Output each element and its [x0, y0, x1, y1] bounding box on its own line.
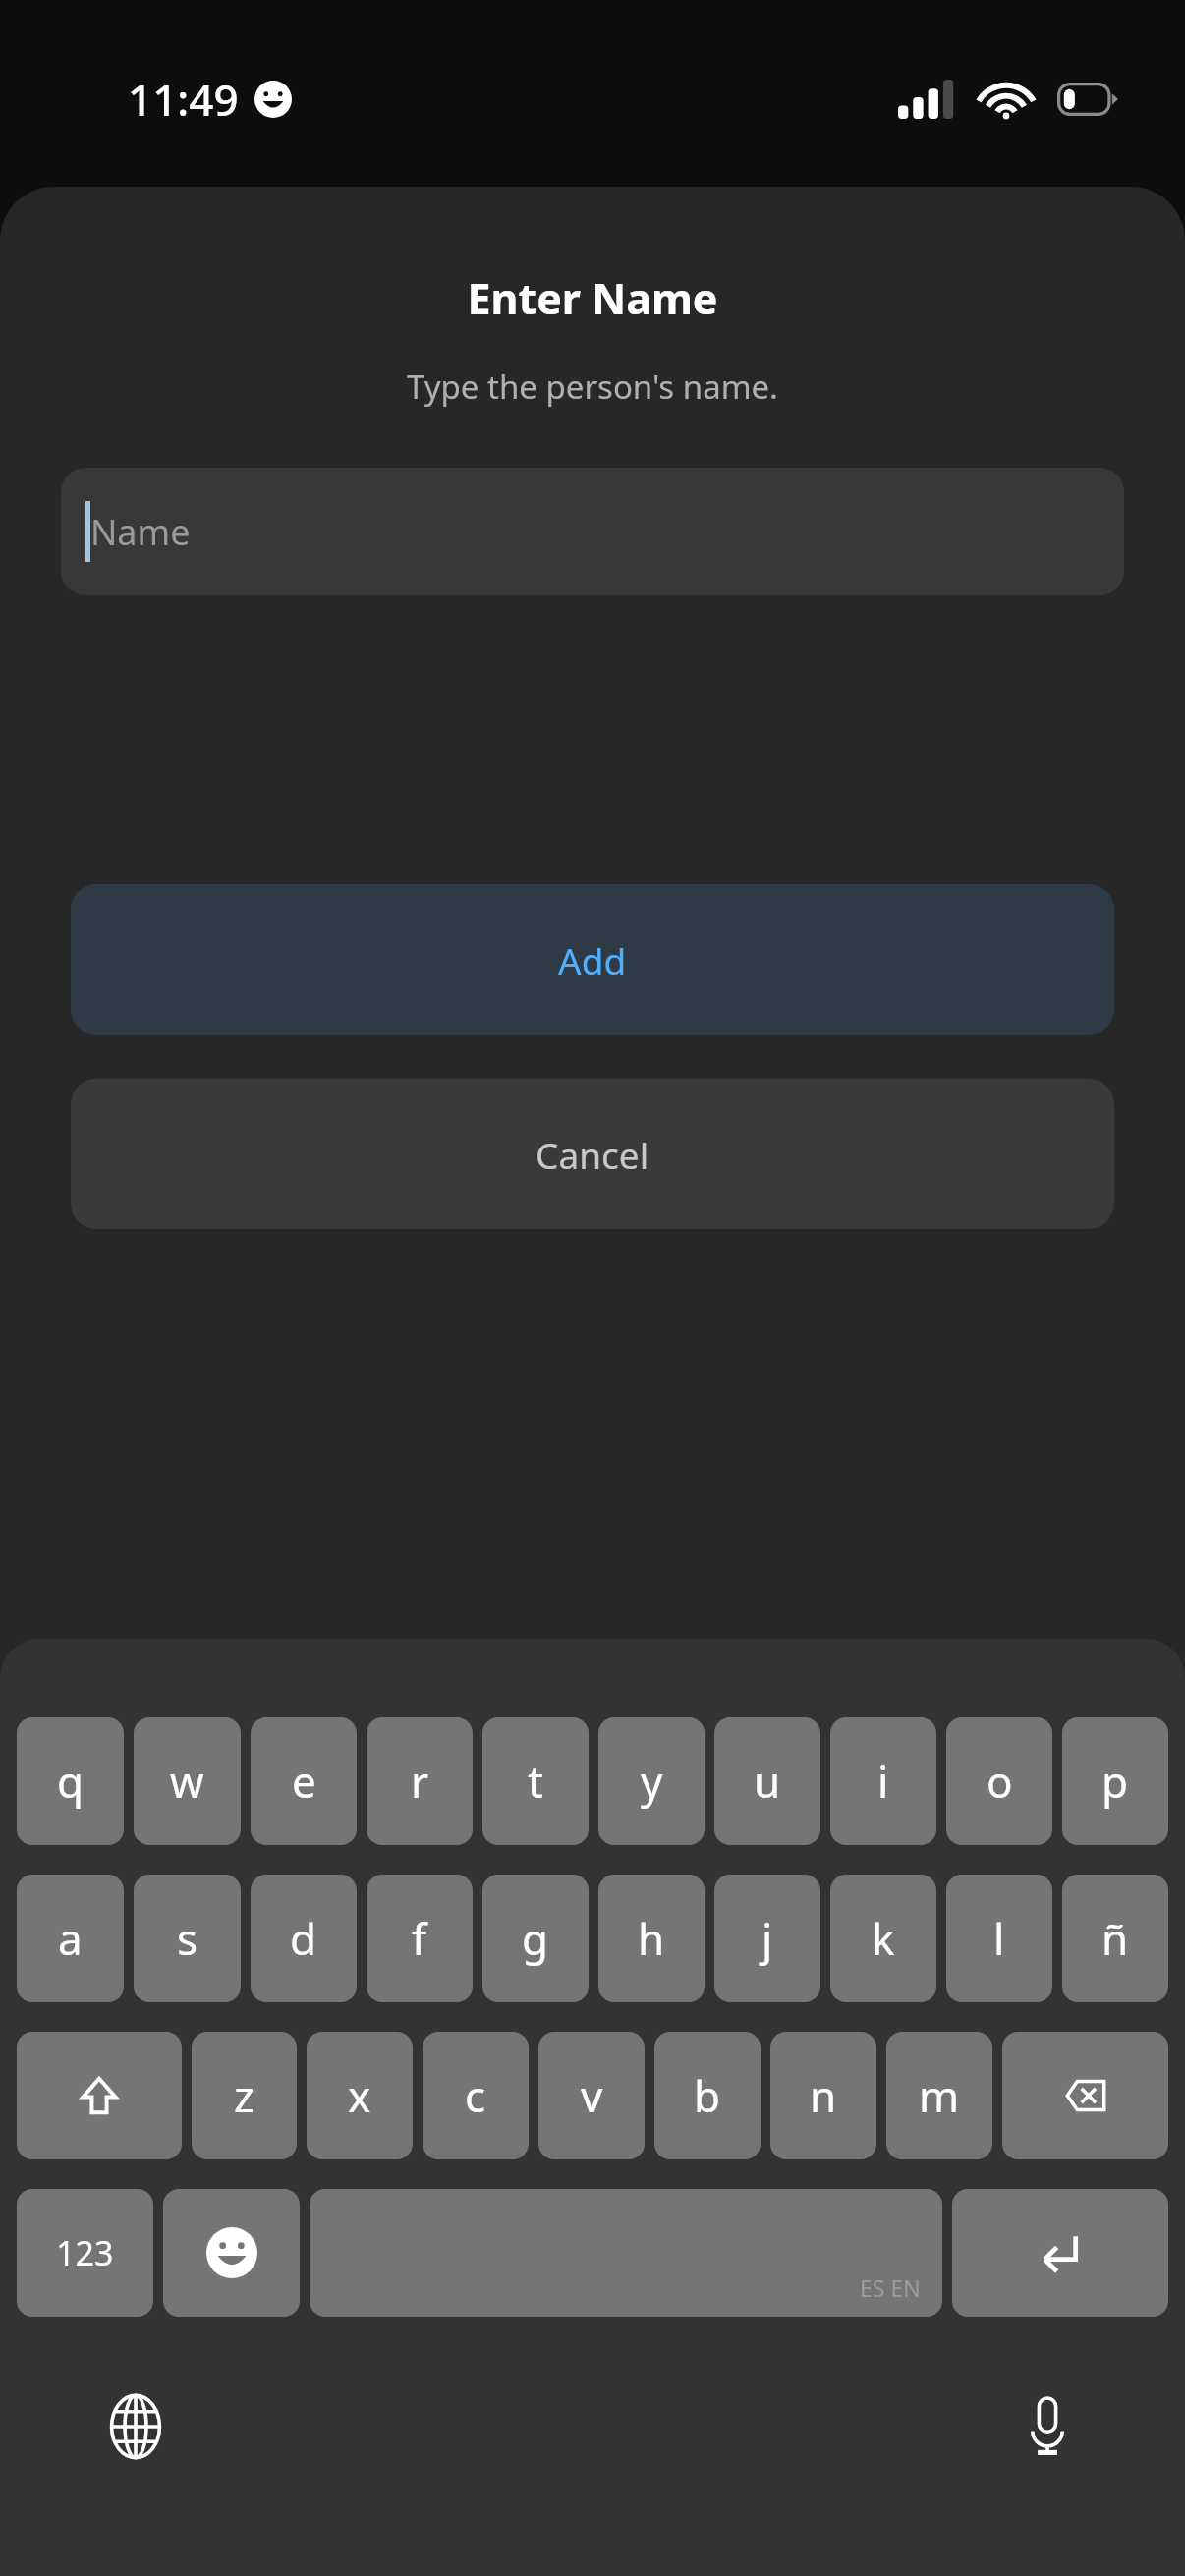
staticText: 11:49: [128, 70, 239, 129]
button[interactable]: q: [17, 1717, 124, 1845]
button[interactable]: Name: [61, 468, 1124, 595]
staticText: Enter Name: [0, 269, 1185, 327]
button[interactable]: t: [482, 1717, 589, 1845]
button[interactable]: i: [830, 1717, 936, 1845]
staticText: f: [412, 1909, 427, 1968]
staticText: x: [348, 2066, 371, 2125]
staticText: Name: [90, 508, 191, 556]
button[interactable]: Voice input: [1000, 2380, 1095, 2474]
staticText: ES EN: [860, 2272, 921, 2303]
button[interactable]: d: [251, 1875, 357, 2002]
staticText: k: [872, 1909, 895, 1968]
staticText: y: [641, 1752, 663, 1811]
button[interactable]: ñ: [1062, 1875, 1168, 2002]
button[interactable]: r: [367, 1717, 473, 1845]
staticText: n: [810, 2066, 837, 2125]
staticText: e: [292, 1752, 316, 1811]
staticText: i: [877, 1752, 889, 1811]
staticText: b: [694, 2066, 721, 2125]
button[interactable]: Add: [71, 884, 1114, 1035]
staticText: 123: [56, 2230, 114, 2275]
button[interactable]: s: [134, 1875, 241, 2002]
staticText: o: [987, 1752, 1013, 1811]
staticText: z: [234, 2066, 254, 2125]
button[interactable]: z: [192, 2032, 297, 2159]
button[interactable]: m: [886, 2032, 992, 2159]
button[interactable]: h: [598, 1875, 705, 2002]
button[interactable]: c: [423, 2032, 529, 2159]
staticText: t: [528, 1752, 543, 1811]
button[interactable]: Backspace: [1002, 2032, 1168, 2159]
staticText: h: [638, 1909, 665, 1968]
button[interactable]: Cancel: [71, 1079, 1114, 1229]
button[interactable]: x: [307, 2032, 413, 2159]
staticText: q: [57, 1752, 85, 1811]
button[interactable]: n: [770, 2032, 876, 2159]
staticText: u: [754, 1752, 781, 1811]
button[interactable]: l: [946, 1875, 1052, 2002]
staticText: v: [581, 2066, 603, 2125]
staticText: Cancel: [536, 1130, 649, 1179]
staticText: j: [762, 1909, 773, 1968]
staticText: c: [465, 2066, 486, 2125]
button[interactable]: y: [598, 1717, 705, 1845]
staticText: a: [58, 1909, 83, 1968]
button[interactable]: g: [482, 1875, 589, 2002]
button[interactable]: 123: [17, 2189, 153, 2317]
button[interactable]: v: [538, 2032, 645, 2159]
button[interactable]: f: [367, 1875, 473, 2002]
button[interactable]: Shift: [17, 2032, 182, 2159]
button[interactable]: Enter: [952, 2189, 1168, 2317]
button[interactable]: p: [1062, 1717, 1168, 1845]
staticText: Type the person's name.: [0, 364, 1185, 409]
button[interactable]: w: [134, 1717, 241, 1845]
button[interactable]: Change language: [88, 2380, 183, 2474]
button[interactable]: Emoji: [163, 2189, 300, 2317]
button[interactable]: o: [946, 1717, 1052, 1845]
staticText: l: [993, 1909, 1005, 1968]
staticText: r: [411, 1752, 429, 1811]
button[interactable]: a: [17, 1875, 124, 2002]
button[interactable]: Space: [310, 2189, 942, 2317]
button[interactable]: e: [251, 1717, 357, 1845]
staticText: Add: [558, 935, 627, 984]
staticText: w: [170, 1752, 204, 1811]
button[interactable]: b: [654, 2032, 761, 2159]
staticText: ñ: [1101, 1909, 1129, 1968]
staticText: s: [177, 1909, 198, 1968]
staticText: g: [522, 1909, 549, 1968]
staticText: p: [1101, 1752, 1129, 1811]
button[interactable]: k: [830, 1875, 936, 2002]
button[interactable]: u: [714, 1717, 820, 1845]
button[interactable]: j: [714, 1875, 820, 2002]
staticText: m: [919, 2066, 960, 2125]
staticText: d: [290, 1909, 317, 1968]
